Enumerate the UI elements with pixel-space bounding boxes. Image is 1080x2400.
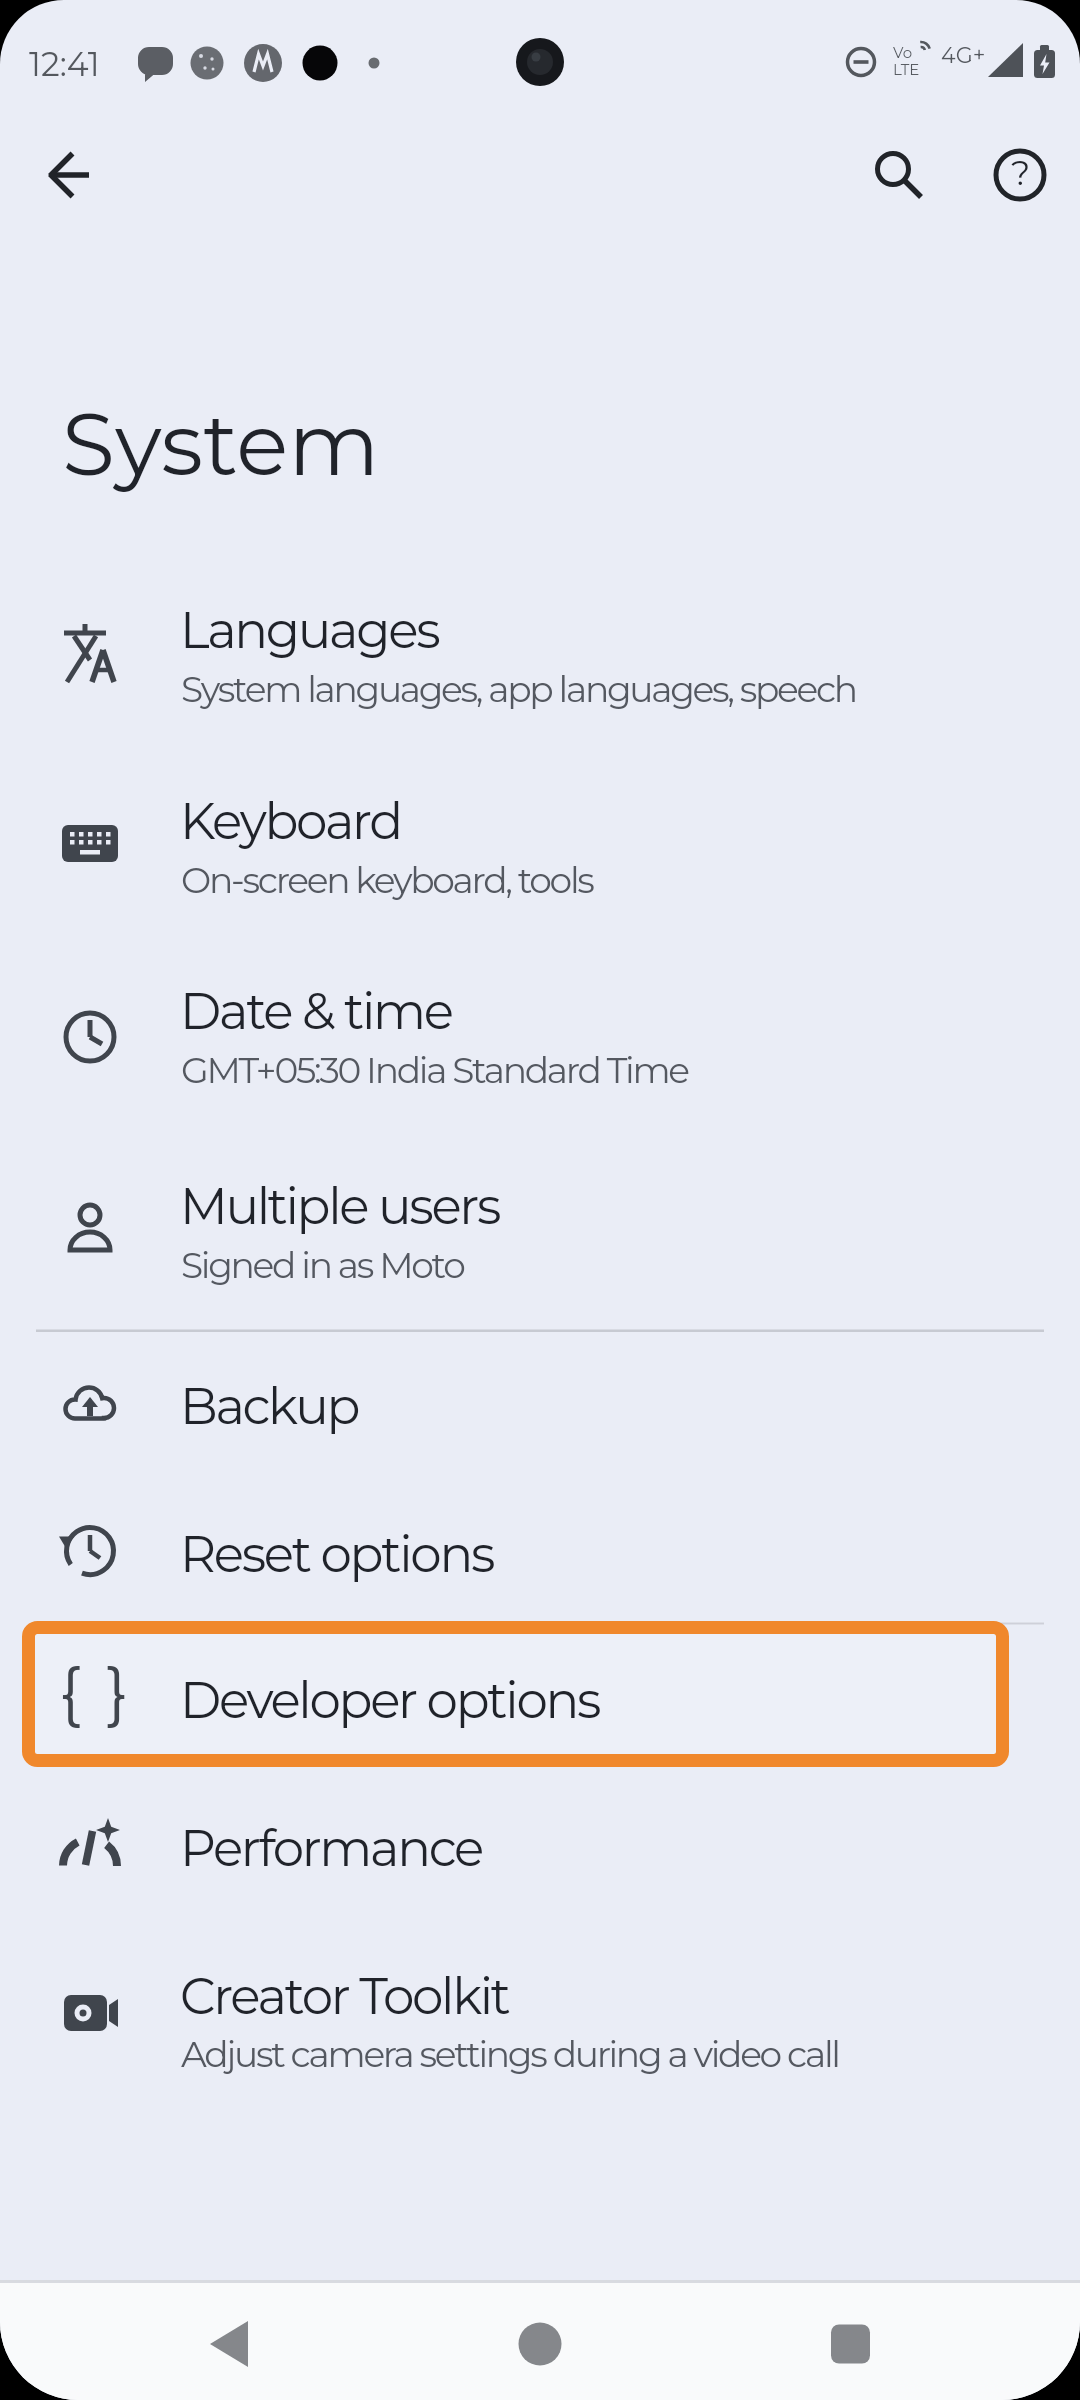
button[interactable] bbox=[0, 1160, 1080, 1340]
staticText: Performance bbox=[180, 1818, 482, 1879]
staticText: Signed in as Moto bbox=[181, 1243, 464, 1287]
staticText: Backup bbox=[180, 1376, 359, 1437]
button[interactable] bbox=[853, 135, 933, 215]
button[interactable] bbox=[0, 1918, 1080, 2110]
button[interactable] bbox=[980, 135, 1060, 215]
button[interactable] bbox=[0, 1624, 1080, 1770]
button[interactable] bbox=[0, 1770, 1080, 1918]
button[interactable] bbox=[480, 2292, 600, 2396]
button[interactable] bbox=[0, 1478, 1080, 1624]
button[interactable] bbox=[0, 775, 1080, 965]
staticText: GMT+05:30 India Standard Time bbox=[181, 1048, 688, 1092]
staticText: Creator Toolkit bbox=[180, 1966, 509, 2027]
button[interactable] bbox=[170, 2292, 290, 2396]
staticText: Vo bbox=[893, 43, 913, 61]
staticText: Keyboard bbox=[180, 791, 401, 852]
staticText: Date & time bbox=[180, 981, 452, 1042]
staticText: Developer options bbox=[180, 1670, 600, 1731]
staticText: LTE bbox=[893, 60, 920, 78]
staticText: 12:41 bbox=[29, 44, 100, 84]
staticText: 4G+ bbox=[941, 42, 986, 69]
staticText: Adjust camera settings during a video ca… bbox=[181, 2032, 839, 2076]
staticText: On-screen keyboard, tools bbox=[181, 858, 593, 902]
staticText: Languages bbox=[180, 600, 439, 661]
staticText: System bbox=[62, 392, 380, 497]
staticText: { } bbox=[59, 1651, 133, 1731]
button[interactable] bbox=[0, 965, 1080, 1160]
button[interactable] bbox=[0, 1340, 1080, 1478]
staticText: Multiple users bbox=[180, 1176, 500, 1237]
staticText: System languages, app languages, speech bbox=[181, 667, 856, 711]
button[interactable] bbox=[790, 2292, 910, 2396]
staticText: Reset options bbox=[180, 1524, 493, 1585]
button[interactable] bbox=[30, 135, 110, 215]
button[interactable] bbox=[0, 580, 1080, 775]
staticText: ? bbox=[1011, 152, 1031, 193]
